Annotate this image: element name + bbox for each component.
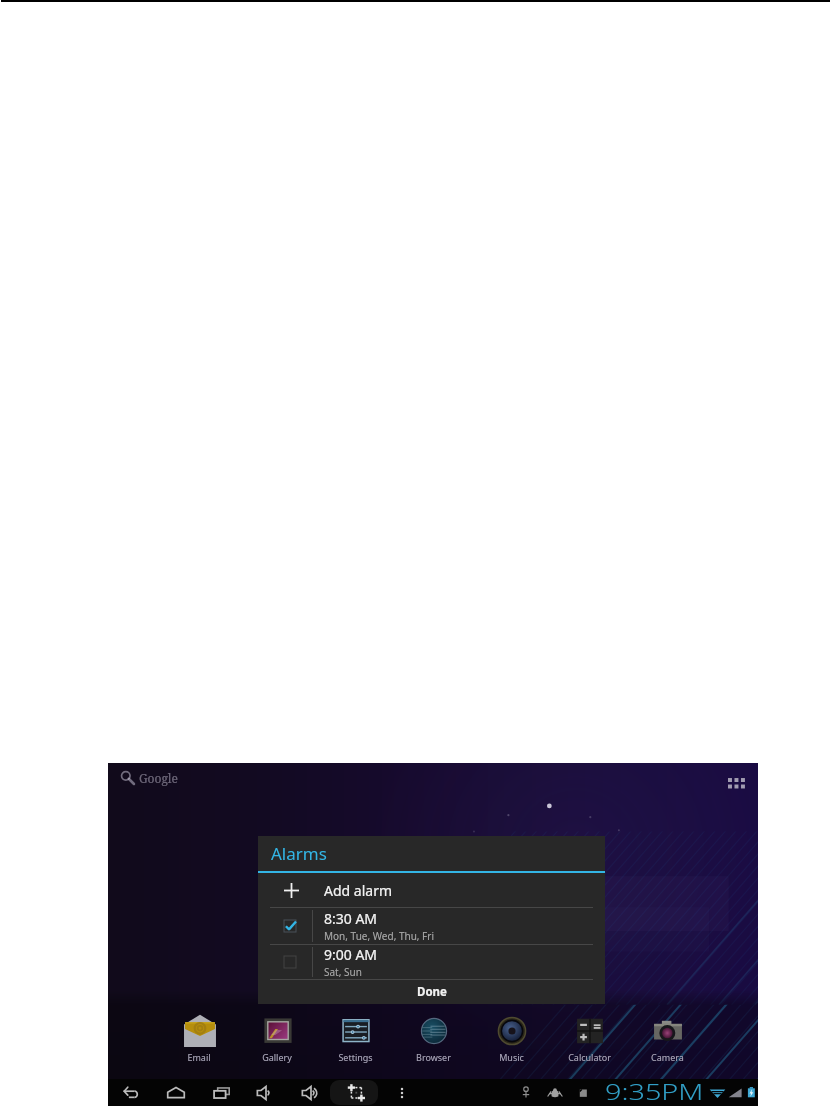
button[interactable]: Signal [727,1084,744,1101]
button[interactable]: Camera [637,1013,697,1063]
staticText: Google [139,770,179,786]
button[interactable]: Battery charging [744,1085,758,1100]
staticText: Calculator [568,1051,611,1063]
button[interactable]: Toggle alarm [258,945,605,979]
button[interactable]: Volume down [253,1079,279,1106]
button[interactable]: 9:35PM [605,1078,704,1106]
button[interactable]: USB [518,1085,534,1101]
staticText: Sat, Sun [324,965,362,979]
staticText: Browser [416,1051,451,1063]
button[interactable]: Storage [575,1085,591,1101]
staticText: 9:00 AM [324,945,378,964]
staticText: Done [417,984,447,1000]
button[interactable]: Volume up [298,1079,324,1106]
button[interactable]: Home [163,1079,189,1106]
staticText: Settings [338,1051,373,1063]
staticText: Music [499,1051,524,1063]
button[interactable]: Settings [325,1013,385,1063]
button[interactable]: Toggle alarm [258,908,605,944]
staticText: Gallery [262,1051,292,1063]
button[interactable]: Developer options [547,1085,563,1101]
button[interactable]: Search [119,769,179,786]
button[interactable]: More options [389,1079,415,1106]
staticText: 8:30 AM [324,909,378,928]
button[interactable]: Browser [403,1013,463,1063]
staticText: Alarms [271,842,327,865]
button[interactable]: Calculator [559,1013,619,1063]
staticText: Camera [651,1051,684,1063]
staticText: Add alarm [324,881,392,900]
staticText: Email [187,1051,211,1063]
staticText: Mon, Tue, Wed, Thu, Fri [324,929,435,943]
button[interactable]: Add alarm [258,873,605,907]
button[interactable]: Recent apps [209,1079,235,1106]
button[interactable]: Email [169,1013,229,1063]
button[interactable]: Apps [725,770,749,794]
button[interactable]: Back [118,1079,144,1106]
other: Toggle alarm [279,951,301,973]
button[interactable]: Wi-Fi [709,1084,726,1101]
other: Toggle alarm [279,915,301,937]
button[interactable]: Done [258,980,605,1004]
button[interactable]: Gallery [247,1013,307,1063]
other: Search [119,769,136,786]
button[interactable]: Music [481,1013,541,1063]
button[interactable]: Screenshot [343,1079,369,1106]
staticText: 9:35PM [605,1078,704,1106]
